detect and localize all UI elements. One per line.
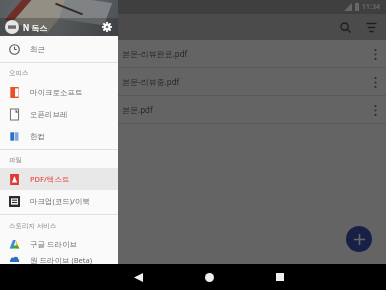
button[interactable]: 원 드라이브 (Beta) (0, 255, 118, 264)
button[interactable]: More options (364, 99, 386, 121)
button[interactable]: Add (346, 226, 372, 252)
button[interactable]: 한컴 (0, 125, 118, 147)
button[interactable]: 최근 (0, 38, 118, 60)
staticText: 마크업(코드)/이북 (30, 196, 90, 206)
button[interactable]: Recents (260, 264, 300, 290)
button[interactable]: Home (189, 264, 229, 290)
button[interactable]: Search (332, 14, 358, 40)
button[interactable]: N 독스 (0, 18, 118, 36)
staticText: 오피스 (9, 69, 29, 77)
staticText: 최근 (30, 45, 45, 54)
staticText: N 독스 (23, 22, 48, 33)
button[interactable]: More options (364, 71, 386, 93)
staticText: 한컴 (30, 132, 45, 141)
button[interactable]: PDF/텍스트 (0, 168, 118, 190)
button[interactable]: 본문-리뷰완료.pdf (0, 40, 386, 67)
staticText: 구글 드라이브 (30, 239, 77, 249)
staticText: 마이크로소프트 (30, 88, 83, 97)
button[interactable]: More options (364, 43, 386, 65)
staticText: PDF/텍스트 (30, 174, 70, 184)
button[interactable]: Settings (98, 18, 116, 36)
button[interactable]: 마크업(코드)/이북 (0, 190, 118, 212)
staticText: 본문-리뷰중.pdf (122, 76, 180, 87)
staticText: 원 드라이브 (Beta) (30, 255, 92, 264)
staticText: 본문-리뷰완료.pdf (122, 48, 188, 59)
button[interactable]: Sort (358, 14, 384, 40)
staticText: 스토리지 서비스 (9, 221, 57, 230)
staticText: 11:34 (362, 2, 380, 12)
staticText: 오픈리브레 (30, 110, 68, 119)
button[interactable]: Back (118, 264, 158, 290)
staticText: 파일 (9, 156, 22, 164)
button[interactable]: 본문-리뷰중.pdf (0, 68, 386, 95)
button[interactable]: 마이크로소프트 (0, 81, 118, 103)
staticText: 본문.pdf (122, 104, 153, 115)
button[interactable]: 본문.pdf (0, 96, 386, 123)
button[interactable]: 구글 드라이브 (0, 233, 118, 255)
button[interactable]: 오픈리브레 (0, 103, 118, 125)
